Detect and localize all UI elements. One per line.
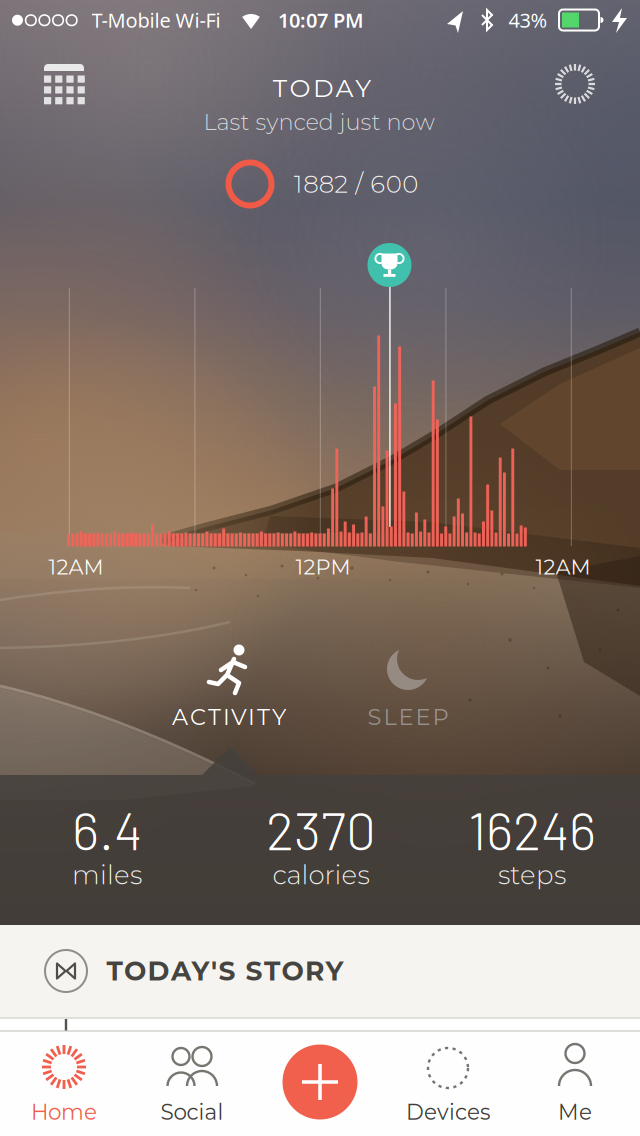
staticText: 12AM: [535, 554, 590, 580]
staticText: 12AM: [48, 554, 103, 580]
staticText: miles: [72, 859, 142, 891]
staticText: 2370: [266, 797, 376, 861]
staticText: 1882 / 600: [294, 169, 418, 199]
staticText: TODAY'S STORY: [106, 955, 343, 987]
staticText: 43%: [508, 7, 547, 33]
staticText: 6.4: [72, 797, 142, 861]
staticText: Me: [558, 1099, 592, 1125]
staticText: steps: [498, 859, 566, 891]
staticText: Home: [31, 1099, 97, 1125]
staticText: Devices: [406, 1099, 490, 1125]
staticText: Last synced just now: [203, 108, 434, 136]
staticText: T-Mobile Wi-Fi: [91, 7, 220, 33]
staticText: TODAY: [273, 73, 371, 103]
staticText: 16246: [468, 797, 596, 861]
staticText: 12PM: [295, 554, 350, 580]
staticText: ACTIVITY: [172, 703, 286, 731]
staticText: Social: [160, 1099, 223, 1125]
staticText: calories: [272, 859, 369, 891]
staticText: SLEEP: [367, 703, 448, 731]
staticText: 10:07 PM: [278, 7, 364, 33]
